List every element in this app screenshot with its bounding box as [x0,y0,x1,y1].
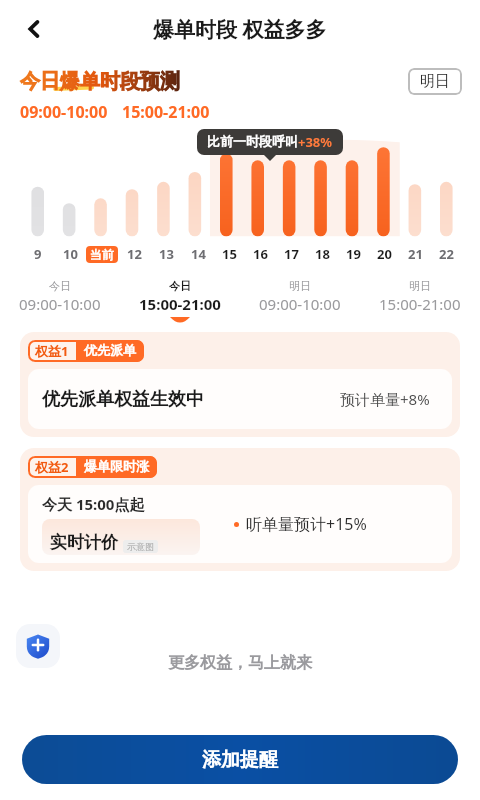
staticText: 20 [377,245,392,263]
staticText: 今日 [49,279,71,293]
staticText: 09:00-10:00 [259,294,341,314]
staticText: 09:00-10:00 [19,294,101,314]
staticText: 权益1 [35,342,69,360]
staticText: 17 [284,245,299,263]
button[interactable]: 今日 [0,279,120,322]
button[interactable]: 明日 [408,68,462,95]
staticText: 明日 [420,72,450,91]
staticText: 今天 15:00点起 [42,494,145,514]
staticText: 听单量预计+15% [246,513,367,535]
staticText: 优先派单 [84,342,136,358]
staticText: 优先派单权益生效中 [42,388,204,411]
staticText: +38% [298,133,333,151]
staticText: 今日 [169,279,191,293]
staticText: 实时计价 [50,532,118,553]
staticText: 15 [222,245,237,263]
staticText: 示意图 [127,541,154,552]
staticText: 今日爆单时段预测 [20,69,180,94]
staticText: 比前一时段呼叫 [207,133,298,149]
staticText: 21 [408,245,423,263]
staticText: 爆单限时涨 [84,458,149,474]
staticText: 更多权益，马上就来 [168,653,312,673]
staticText: 权益2 [35,458,69,476]
button[interactable]: 明日 [360,279,480,322]
button[interactable]: Back [12,7,56,51]
button[interactable]: 权益2 [20,448,460,571]
staticText: 16 [253,245,268,263]
button[interactable]: Add shield [16,624,60,668]
button[interactable]: 今日 [120,279,240,322]
staticText: 明日 [289,279,311,293]
staticText: 10 [63,245,78,263]
staticText: 9 [34,245,42,263]
staticText: 预计单量+8% [340,389,430,409]
staticText: 22 [439,245,454,263]
staticText: 12 [127,245,142,263]
staticText: 明日 [409,279,431,293]
staticText: 09:00-10:00 [20,101,108,123]
button[interactable]: 权益1 [20,332,460,437]
button[interactable]: 明日 [240,279,360,322]
staticText: 爆单时段 权益多多 [153,15,327,44]
staticText: 添加提醒 [202,748,278,772]
staticText: 19 [346,245,361,263]
staticText: 15:00-21:00 [122,101,210,123]
staticText: 当前 [90,247,114,262]
staticText: 13 [159,245,174,263]
staticText: 15:00-21:00 [379,294,461,314]
staticText: 15:00-21:00 [139,294,221,314]
staticText: 18 [315,245,330,263]
staticText: 14 [191,245,206,263]
button[interactable]: 添加提醒 [22,735,458,784]
